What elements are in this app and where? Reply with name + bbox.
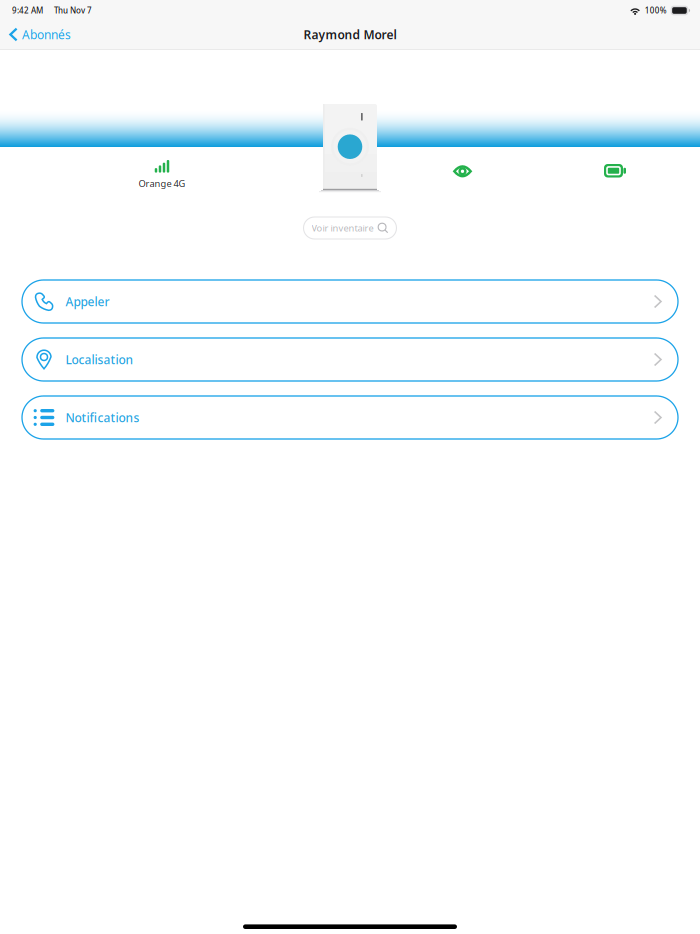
- button[interactable]: Appeler: [22, 280, 678, 323]
- staticText: Orange 4G: [138, 177, 185, 189]
- staticText: Abonnés: [22, 26, 71, 42]
- staticText: Localisation: [65, 351, 133, 367]
- staticText: Notifications: [65, 409, 139, 425]
- staticText: 9:42 AM: [12, 5, 43, 16]
- staticText: 100%: [645, 5, 667, 16]
- staticText: Raymond Morel: [303, 26, 396, 42]
- staticText: Voir inventaire: [311, 222, 373, 234]
- button[interactable]: Abonnés: [0, 20, 79, 48]
- button[interactable]: Voir inventaire: [303, 217, 396, 239]
- staticText: Appeler: [65, 293, 109, 309]
- staticText: Thu Nov 7: [54, 5, 92, 16]
- button[interactable]: Localisation: [22, 338, 678, 381]
- button[interactable]: Notifications: [22, 396, 678, 439]
